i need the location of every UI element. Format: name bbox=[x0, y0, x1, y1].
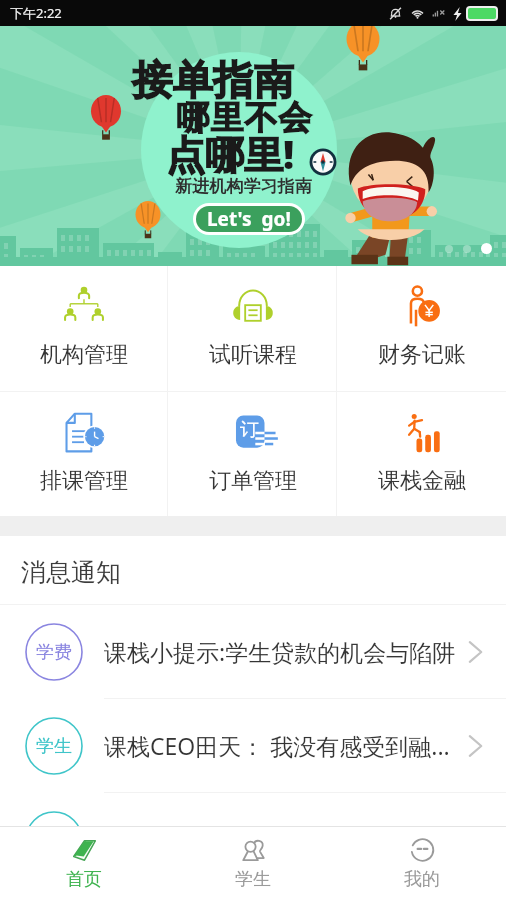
button[interactable]: 学生 bbox=[168, 827, 337, 900]
button[interactable]: 学员 bbox=[0, 793, 506, 886]
staticText: 订单管理 bbox=[209, 467, 297, 495]
button[interactable]: 财务记账 bbox=[337, 266, 506, 391]
staticText: 排课管理 bbox=[40, 467, 128, 495]
staticText: 接单指南 bbox=[132, 55, 294, 105]
button[interactable]: 学费 bbox=[0, 605, 506, 698]
staticText: 订 bbox=[240, 418, 259, 442]
staticText: 课栈CEO田天： 我没有感受到融... bbox=[104, 730, 462, 761]
staticText: 下午2:22 bbox=[10, 4, 62, 22]
staticText: 学生 bbox=[235, 868, 271, 891]
staticText: 机构管理 bbox=[40, 341, 128, 369]
button[interactable]: 学生 bbox=[0, 699, 506, 792]
staticText: 学费 bbox=[36, 641, 72, 664]
staticText: Let's go! bbox=[207, 206, 291, 232]
staticText: 哪里不会 bbox=[176, 97, 312, 139]
staticText: 课栈金融 bbox=[378, 467, 466, 495]
staticText: 消息通知 bbox=[21, 557, 121, 588]
staticText: 试听课程 bbox=[209, 341, 297, 369]
button[interactable]: 首页 bbox=[0, 827, 168, 900]
staticText: 点哪里! bbox=[166, 127, 295, 180]
staticText: 我的 bbox=[404, 868, 440, 891]
button[interactable]: 试听课程 bbox=[168, 266, 337, 391]
staticText: 学生 bbox=[36, 735, 72, 758]
button[interactable]: 我的 bbox=[337, 827, 506, 900]
button[interactable]: 课栈金融 bbox=[337, 392, 506, 516]
button[interactable]: 订 bbox=[168, 392, 337, 516]
staticText: 首页 bbox=[66, 868, 102, 891]
staticText: 财务记账 bbox=[378, 341, 466, 369]
button[interactable]: 机构管理 bbox=[0, 266, 168, 391]
staticText: 课栈小提示:学生贷款的机会与陷阱 bbox=[104, 636, 462, 667]
button[interactable]: Let's go! bbox=[196, 206, 302, 232]
staticText: 课栈小提示:学生贷款的机会 bbox=[104, 824, 462, 855]
staticText: 新进机构学习指南 bbox=[175, 176, 312, 197]
button[interactable]: 排课管理 bbox=[0, 392, 168, 516]
